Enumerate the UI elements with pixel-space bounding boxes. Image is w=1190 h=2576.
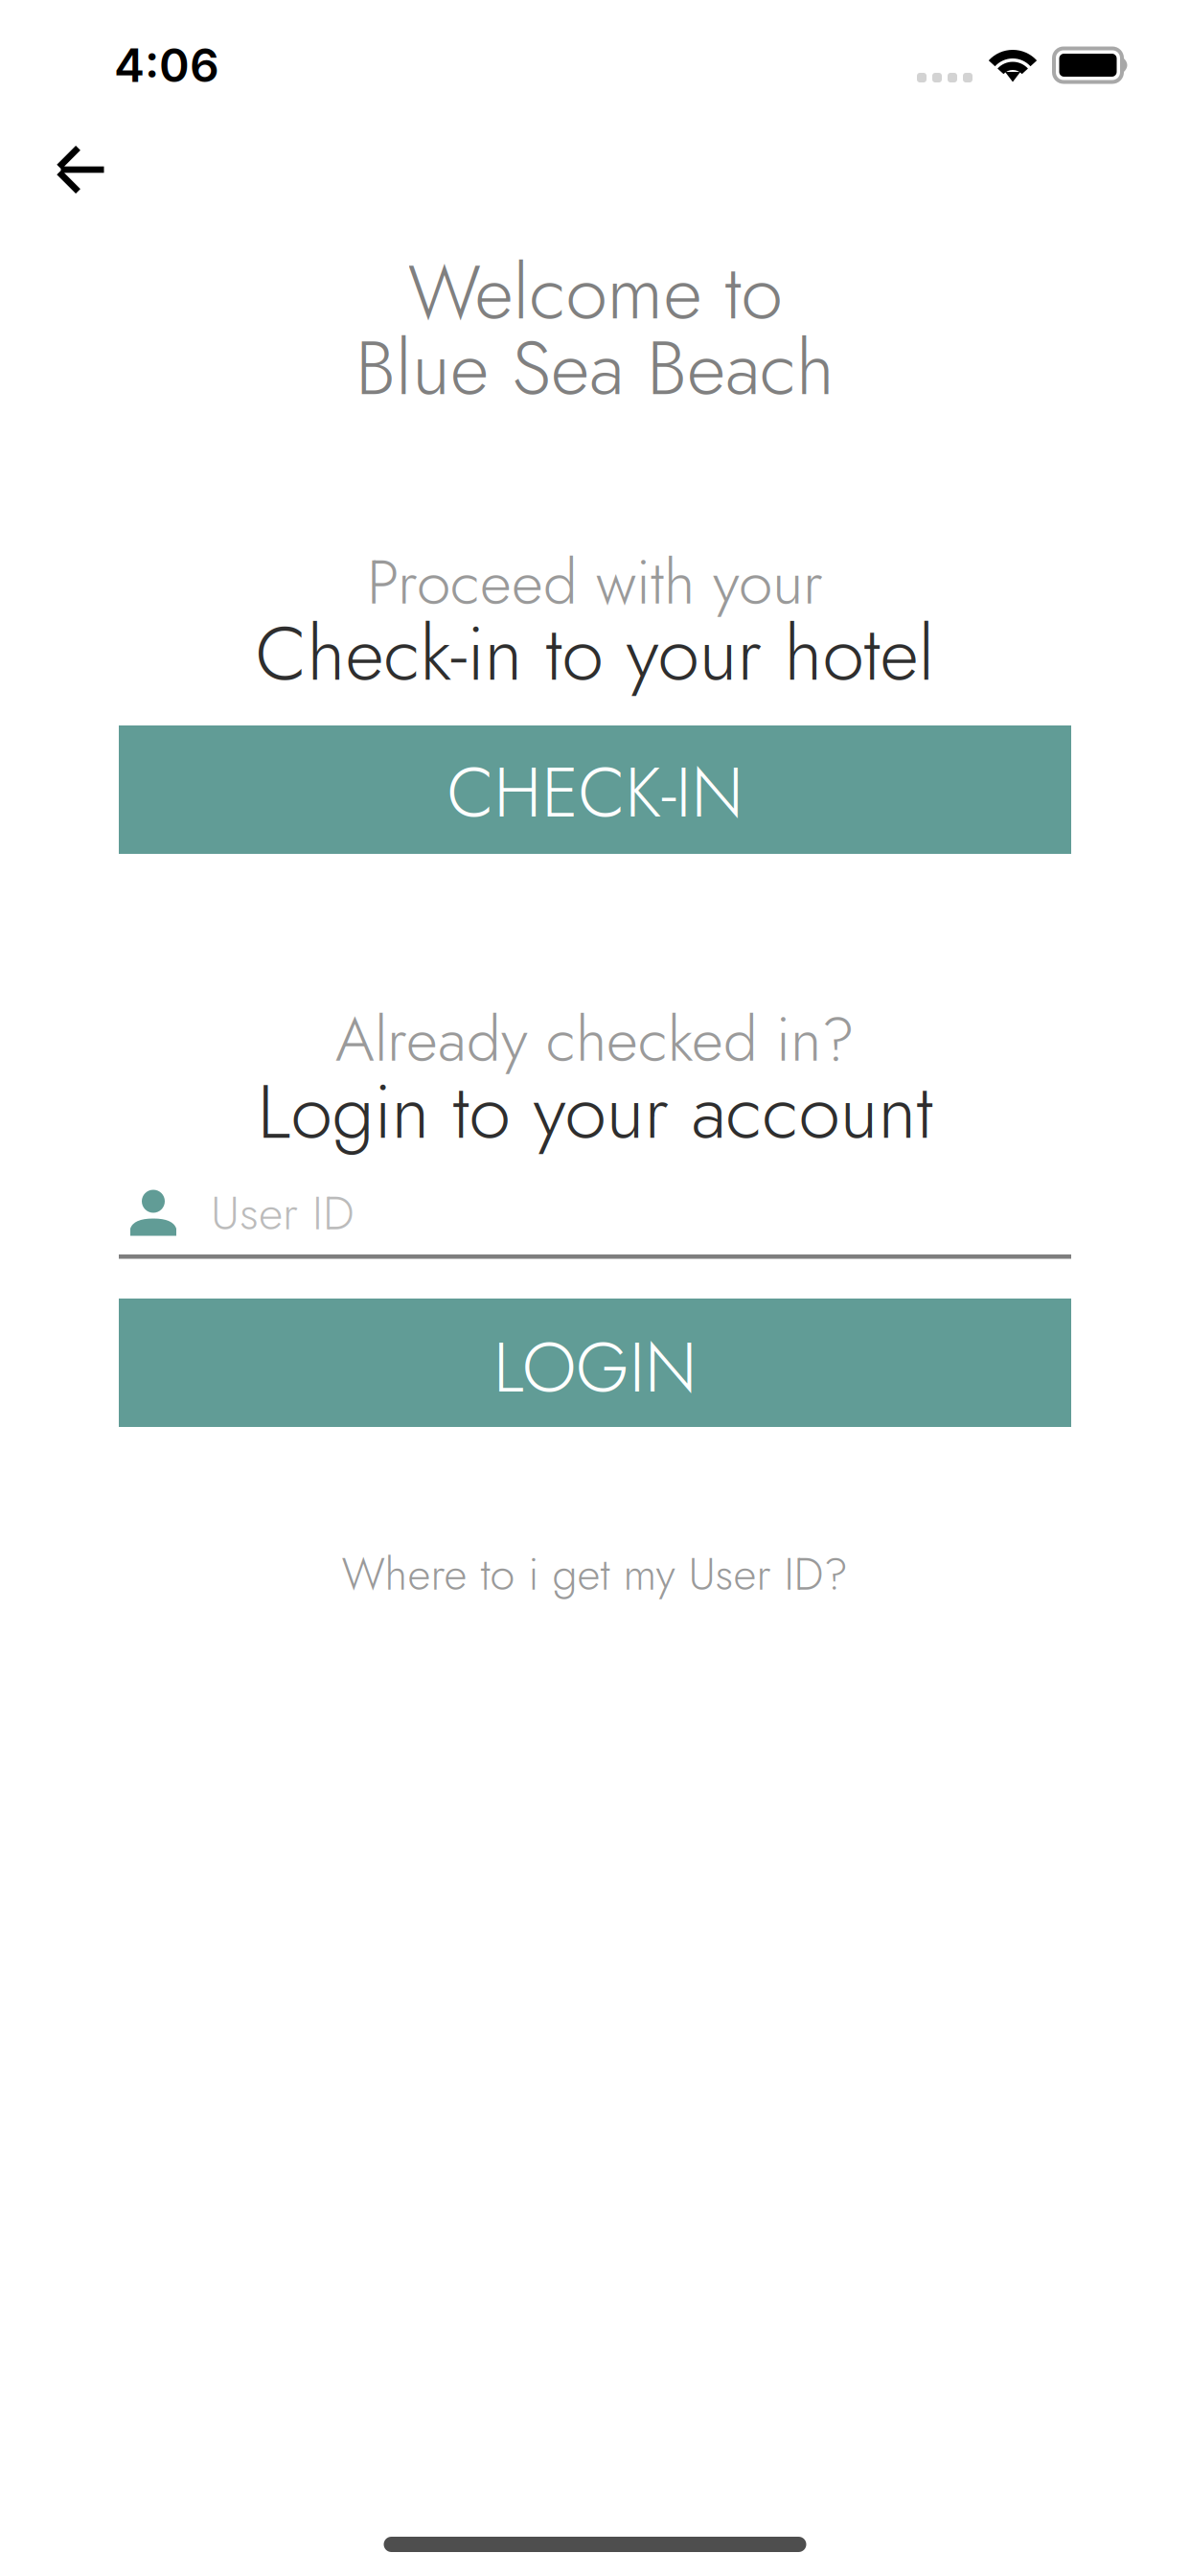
staticText: Blue Sea Beach bbox=[355, 314, 835, 423]
staticText: 4:06 bbox=[114, 37, 219, 93]
staticText: CHECK-IN bbox=[447, 743, 743, 842]
staticText: Welcome to bbox=[408, 238, 782, 347]
button[interactable]: Where to i get my User ID? bbox=[0, 1542, 1190, 1606]
staticText: LOGIN bbox=[493, 1318, 697, 1417]
staticText: Check-in to your hotel bbox=[255, 599, 935, 708]
staticText: Already checked in? bbox=[335, 995, 855, 1084]
button[interactable]: Back bbox=[29, 130, 131, 209]
button[interactable]: CHECK-IN bbox=[119, 725, 1071, 854]
staticText: Proceed with your bbox=[367, 538, 823, 627]
staticText: User ID bbox=[211, 1179, 355, 1247]
staticText: Where to i get my User ID? bbox=[342, 1542, 848, 1606]
button[interactable]: LOGIN bbox=[119, 1299, 1071, 1427]
staticText: Login to your account bbox=[257, 1057, 933, 1166]
